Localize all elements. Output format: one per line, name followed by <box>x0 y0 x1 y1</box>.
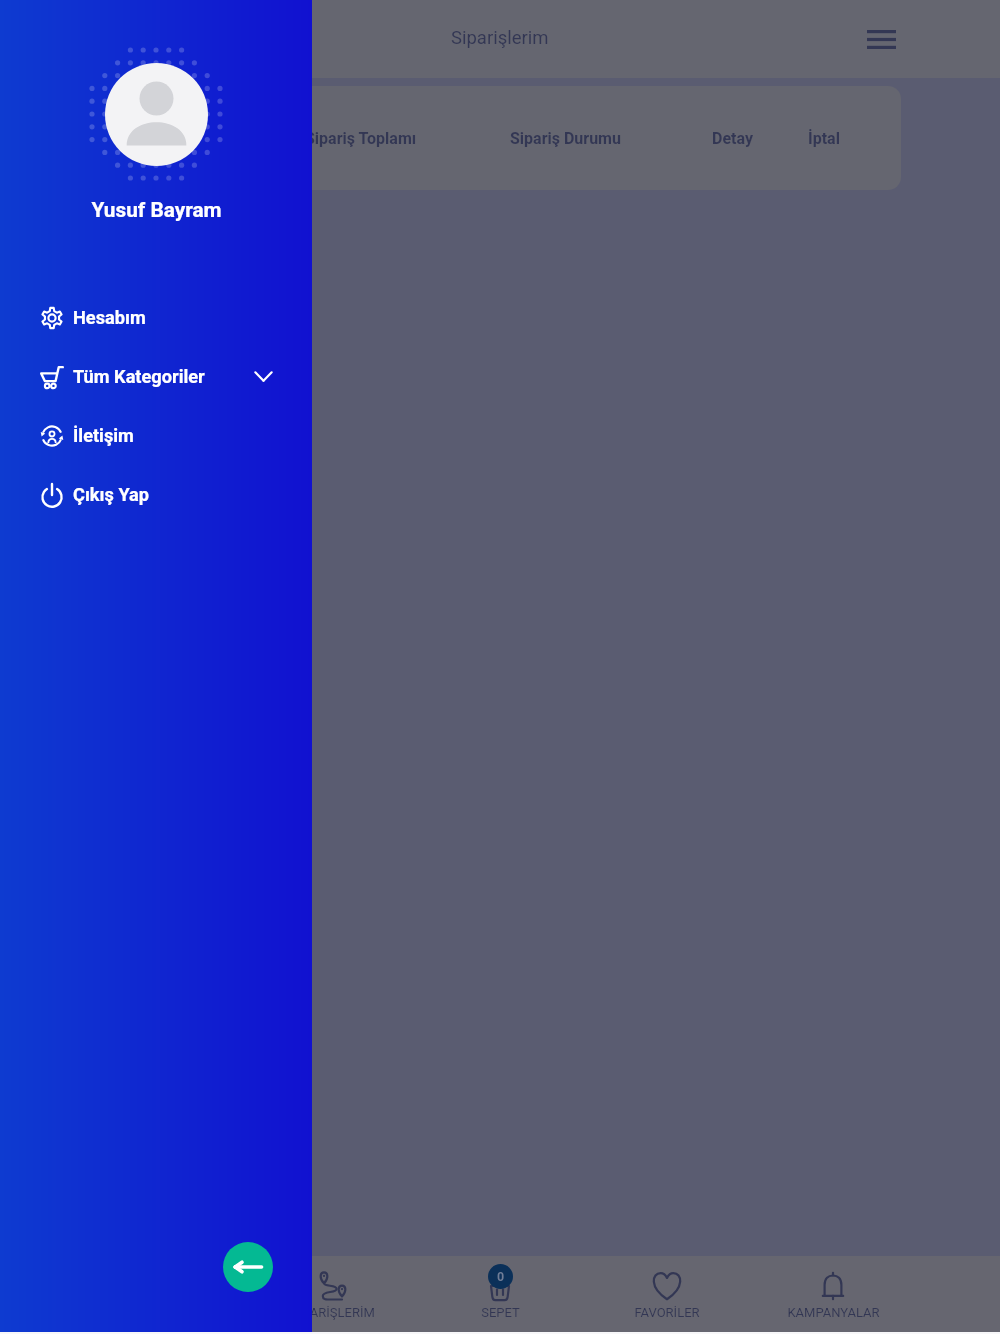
button[interactable]: Çıkış Yap <box>0 465 312 524</box>
staticText: Sipariş Toplamı <box>305 129 417 148</box>
button[interactable]: Open navigation menu <box>857 15 905 63</box>
staticText: Tüm Kategoriler <box>73 366 205 387</box>
staticText: İptal <box>808 129 840 148</box>
staticText: KAMPANYALAR <box>787 1305 880 1320</box>
staticText: Çıkış Yap <box>73 484 150 505</box>
staticText: SİPARİŞLERİM <box>291 1305 375 1320</box>
button[interactable]: KAMPANYALAR <box>750 1256 916 1334</box>
staticText: Yusuf Bayram <box>91 198 222 222</box>
button[interactable]: SİPARİŞLERİM <box>250 1256 416 1334</box>
staticText: Hesabım <box>73 307 146 328</box>
button[interactable]: Hesabım <box>0 288 312 347</box>
button[interactable]: Close navigation drawer <box>223 1242 273 1292</box>
staticText: SEPET <box>481 1305 520 1320</box>
staticText: İletişim <box>73 425 134 446</box>
staticText: Sipariş Durumu <box>510 129 621 148</box>
button[interactable]: İletişim <box>0 406 312 465</box>
button[interactable]: FAVORİLER <box>584 1256 750 1334</box>
staticText: Sipariş No <box>130 129 205 148</box>
button[interactable]: Tüm Kategoriler <box>0 347 312 406</box>
staticText: Detay <box>712 129 753 148</box>
button[interactable]: SEPET <box>417 1256 583 1334</box>
staticText: FAVORİLER <box>634 1305 700 1320</box>
staticText: 0 <box>497 1269 505 1284</box>
staticText: Siparişlerim <box>451 27 549 49</box>
